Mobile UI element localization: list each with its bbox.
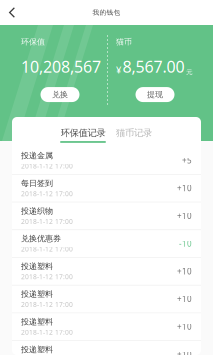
staticText: 投递塑料	[21, 261, 53, 271]
button[interactable]: 兑换	[40, 87, 79, 102]
staticText: 我的钱包	[92, 8, 120, 17]
staticText: 兑换优惠券	[21, 234, 61, 244]
staticText: +10	[177, 211, 192, 221]
staticText: 元	[186, 68, 193, 76]
staticText: 2018-1-12 17:00	[21, 328, 73, 337]
button[interactable]: 投递织物	[12, 202, 201, 230]
staticText: 投递塑料	[21, 317, 53, 327]
staticText: 猫币	[116, 37, 132, 47]
staticText: 2018-1-12 17:00	[21, 245, 73, 253]
staticText: 8,567.00	[122, 56, 184, 77]
staticText: +10	[177, 294, 192, 304]
staticText: +10	[177, 183, 192, 193]
staticText: +5	[182, 155, 192, 166]
staticText: 投递塑料	[21, 345, 53, 354]
staticText: +10	[177, 266, 192, 277]
staticText: 猫币记录	[116, 127, 152, 139]
staticText: 2018-1-12 17:00	[21, 272, 73, 281]
button[interactable]: 兑换优惠券	[12, 230, 201, 258]
staticText: -10	[179, 238, 192, 249]
staticText: 每日签到	[21, 178, 53, 188]
button[interactable]: 投递塑料	[12, 313, 201, 341]
staticText: +10	[177, 349, 192, 355]
staticText: 投递织物	[21, 206, 53, 216]
staticText: 2018-1-12 17:00	[21, 300, 73, 309]
staticText: 环保值记录	[60, 127, 105, 139]
button[interactable]: 每日签到	[12, 175, 201, 202]
button[interactable]: 猫币记录	[115, 115, 153, 143]
button[interactable]: 投递塑料	[12, 285, 201, 313]
staticText: 10,208,567	[21, 56, 101, 77]
staticText: 兑换	[52, 90, 68, 99]
button[interactable]: 投递塑料	[12, 258, 201, 285]
staticText: 环保值	[21, 37, 45, 47]
staticText: ¥	[116, 64, 121, 76]
button[interactable]: 投递塑料	[12, 341, 201, 355]
button[interactable]: Back	[0, 0, 24, 25]
button[interactable]: 环保值记录	[60, 115, 106, 143]
staticText: +10	[177, 321, 192, 332]
staticText: 2018-1-12 17:00	[21, 217, 73, 226]
button[interactable]: 投递金属	[12, 147, 201, 175]
staticText: 投递金属	[21, 151, 53, 160]
staticText: 投递塑料	[21, 289, 53, 299]
staticText: 2018-1-12 17:00	[21, 161, 73, 170]
staticText: 提现	[147, 90, 163, 99]
staticText: 2018-1-12 17:00	[21, 189, 73, 198]
button[interactable]: 提现	[135, 87, 174, 102]
